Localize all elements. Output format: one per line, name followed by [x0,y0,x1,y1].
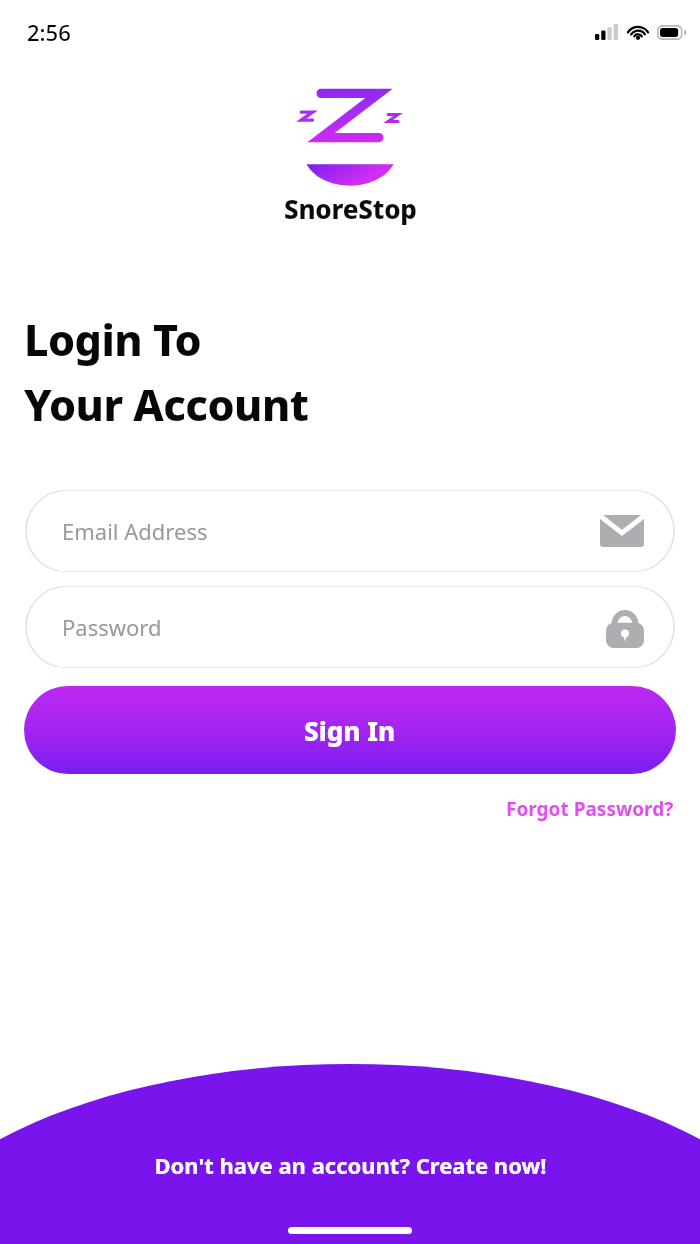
staticText: SnoreStop [284,191,417,226]
button[interactable]: Forgot Password? [504,792,676,826]
staticText: 2:56 [27,17,71,47]
button[interactable]: Don't have an account? Create now! [146,1146,555,1184]
staticText: Login To [24,310,202,369]
staticText: Sign In [304,713,396,748]
staticText: Password [62,612,162,642]
staticText: Forgot Password? [506,796,674,822]
button[interactable]: Sign In [24,686,676,774]
button[interactable]: Password [24,586,676,668]
other: Email [600,515,644,547]
staticText: Your Account [24,375,309,434]
other: Password [606,606,644,648]
staticText: Email Address [62,516,208,546]
button[interactable]: Email Address [24,490,676,572]
staticText: Don't have an account? Create now! [154,1150,547,1180]
